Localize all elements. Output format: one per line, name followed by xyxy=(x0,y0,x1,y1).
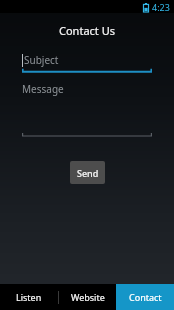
staticText: Contact Us xyxy=(59,23,115,38)
staticText: 4:23 xyxy=(152,1,170,13)
staticText: Message xyxy=(22,82,64,96)
staticText: Website xyxy=(71,291,105,303)
staticText: Contact xyxy=(129,291,162,303)
staticText: Subject xyxy=(24,53,59,67)
staticText: Send xyxy=(77,167,99,179)
button[interactable]: Listen xyxy=(0,284,58,310)
button[interactable]: Website xyxy=(59,284,116,310)
button[interactable]: Subject xyxy=(22,52,152,73)
staticText: Listen xyxy=(16,291,42,303)
button[interactable]: Send xyxy=(70,161,105,184)
button[interactable]: Message xyxy=(22,81,152,137)
button[interactable]: Contact xyxy=(116,284,174,310)
